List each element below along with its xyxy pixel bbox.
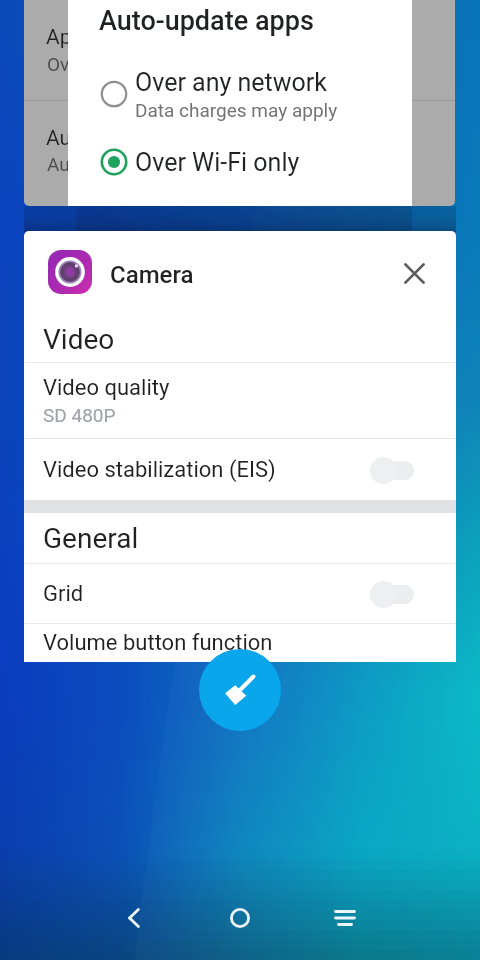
staticText: Ap [46,25,72,50]
button[interactable]: Volume button function [24,624,456,662]
staticText: Video quality [43,375,170,401]
staticText: Video stabilization (EIS) [43,457,276,483]
staticText: Over any network [135,68,327,97]
staticText: Au [47,153,70,175]
staticText: General [43,522,139,555]
staticText: Data charges may apply [135,99,338,121]
button[interactable]: Menu [321,894,369,942]
button[interactable]: Close [394,253,434,293]
staticText: Volume button function [43,630,273,656]
button[interactable]: Over any network [68,64,412,124]
button[interactable]: Home [216,894,264,942]
button[interactable]: Clean [199,649,281,731]
button[interactable]: Back [110,894,158,942]
button[interactable]: Grid [24,564,456,623]
staticText: Ove [47,53,80,75]
staticText: SD 480P [43,404,116,426]
staticText: Grid [43,581,84,607]
staticText: Over Wi-Fi only [135,148,300,177]
button[interactable]: Over Wi-Fi only [68,136,412,188]
button[interactable]: Video quality [24,363,456,438]
button[interactable]: Camera [24,235,456,309]
staticText: Camera [110,261,194,289]
staticText: Video [43,323,115,356]
button[interactable]: Video stabilization (EIS) [24,439,456,500]
staticText: Auto-update apps [99,5,314,37]
staticText: Au [46,126,72,151]
